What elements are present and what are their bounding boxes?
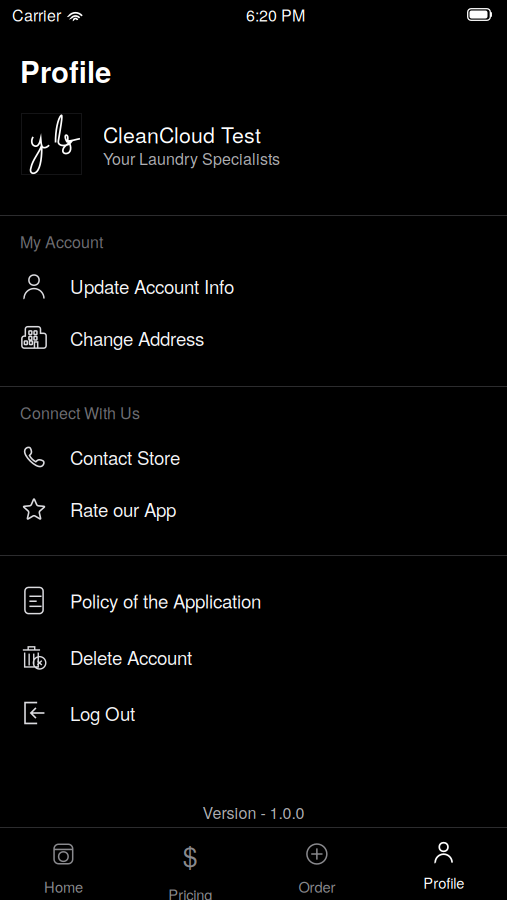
staticText: 6:20 PM [246, 3, 305, 26]
button[interactable]: Order [253, 828, 380, 900]
staticText: Pricing [168, 884, 212, 900]
staticText: Connect With Us [20, 401, 140, 424]
button[interactable]: Contact Store [0, 431, 507, 483]
button[interactable]: Policy of the Application [0, 572, 507, 629]
staticText: Log Out [70, 700, 135, 726]
button[interactable]: Home [0, 828, 127, 900]
staticText: Profile [20, 50, 111, 92]
staticText: Your Laundry Specialists [103, 146, 280, 169]
staticText: CleanCloud Test [103, 119, 261, 149]
button[interactable]: Delete Account [0, 629, 507, 685]
button[interactable]: Update Account Info [0, 260, 507, 312]
staticText: Profile [423, 872, 464, 893]
staticText: Order [298, 876, 335, 897]
staticText: My Account [20, 230, 103, 253]
staticText: Policy of the Application [70, 587, 261, 614]
staticText: $ [183, 836, 198, 875]
staticText: Change Address [70, 325, 204, 351]
button[interactable]: Change Address [0, 312, 507, 364]
button[interactable]: Profile [380, 828, 507, 900]
staticText: Rate our App [70, 496, 176, 522]
button[interactable]: $ [127, 828, 254, 900]
button[interactable]: Rate our App [0, 483, 507, 535]
button[interactable]: Log Out [0, 685, 507, 741]
staticText: Delete Account [70, 644, 192, 670]
staticText: Carrier [12, 3, 61, 26]
staticText: Version - 1.0.0 [202, 800, 304, 823]
staticText: Home [44, 876, 83, 897]
staticText: Update Account Info [70, 273, 234, 299]
staticText: Contact Store [70, 444, 180, 470]
